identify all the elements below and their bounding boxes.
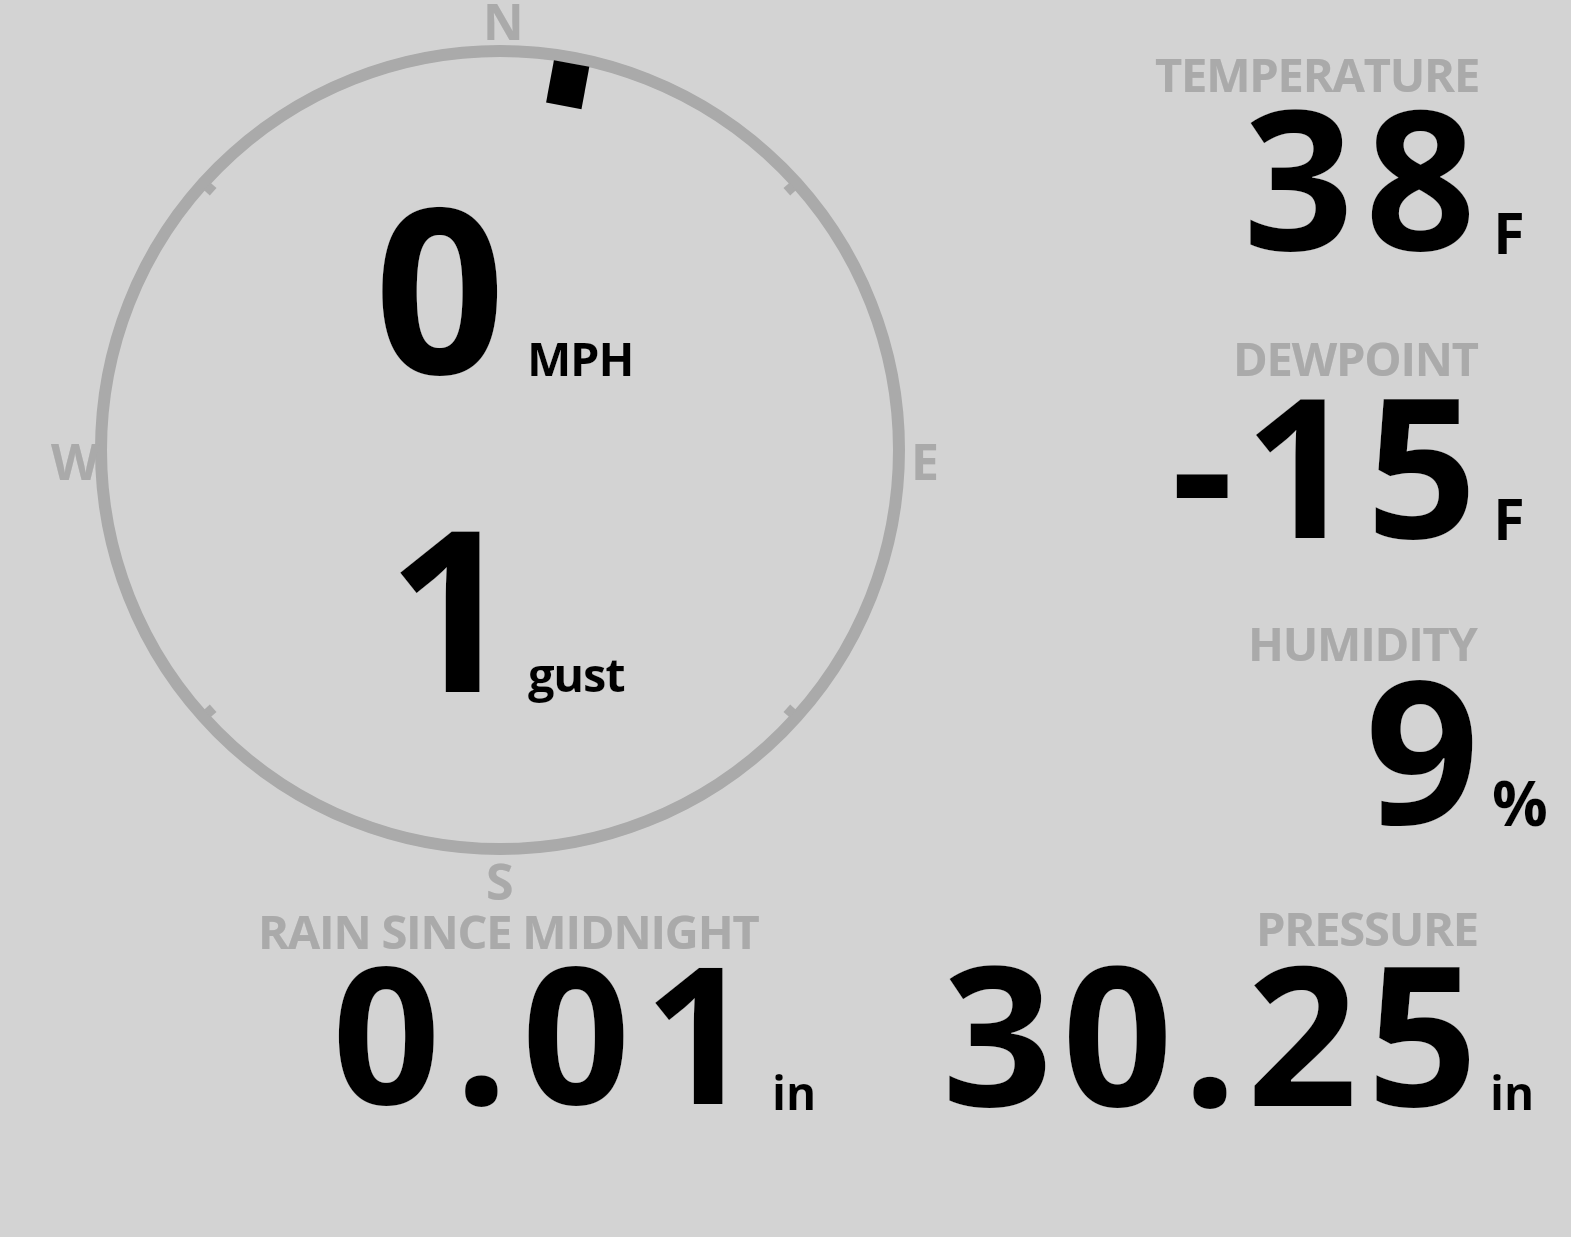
staticText: MPH — [527, 326, 634, 390]
staticText: 1 — [387, 453, 516, 758]
button[interactable]: Dewpoint minus 15 degrees Fahrenheit — [1000, 315, 1571, 545]
button[interactable]: Humidity 9 percent — [1000, 600, 1571, 830]
staticText: 0 — [374, 128, 506, 441]
staticText: in — [772, 1061, 817, 1124]
staticText: -15 — [1171, 331, 1489, 595]
staticText: 9 — [1365, 610, 1485, 882]
staticText: RAIN SINCE MIDNIGHT — [258, 899, 759, 963]
button[interactable]: Rain since midnight 0.01 inches — [240, 890, 800, 1120]
staticText: HUMIDITY — [1248, 611, 1477, 675]
staticText: S — [486, 847, 514, 915]
staticText: PRESSURE — [1256, 896, 1478, 960]
staticText: F — [1493, 192, 1525, 271]
staticText: % — [1492, 760, 1548, 844]
staticText: 30.25 — [942, 899, 1488, 1163]
staticText: F — [1493, 478, 1525, 557]
button[interactable]: Wind 0 miles per hour, gusting 1, from t… — [96, 46, 906, 856]
staticText: 0.01 — [332, 901, 767, 1160]
button[interactable]: Temperature 38 degrees Fahrenheit — [1000, 30, 1571, 260]
staticText: 38 — [1243, 43, 1487, 307]
staticText: DEWPOINT — [1233, 326, 1478, 390]
staticText: W — [51, 427, 100, 495]
staticText: gust — [528, 642, 625, 706]
staticText: TEMPERATURE — [1155, 42, 1480, 106]
button[interactable]: Pressure 30.25 inches — [900, 890, 1500, 1120]
staticText: in — [1490, 1061, 1535, 1124]
staticText: E — [911, 427, 940, 495]
staticText: N — [483, 0, 524, 55]
